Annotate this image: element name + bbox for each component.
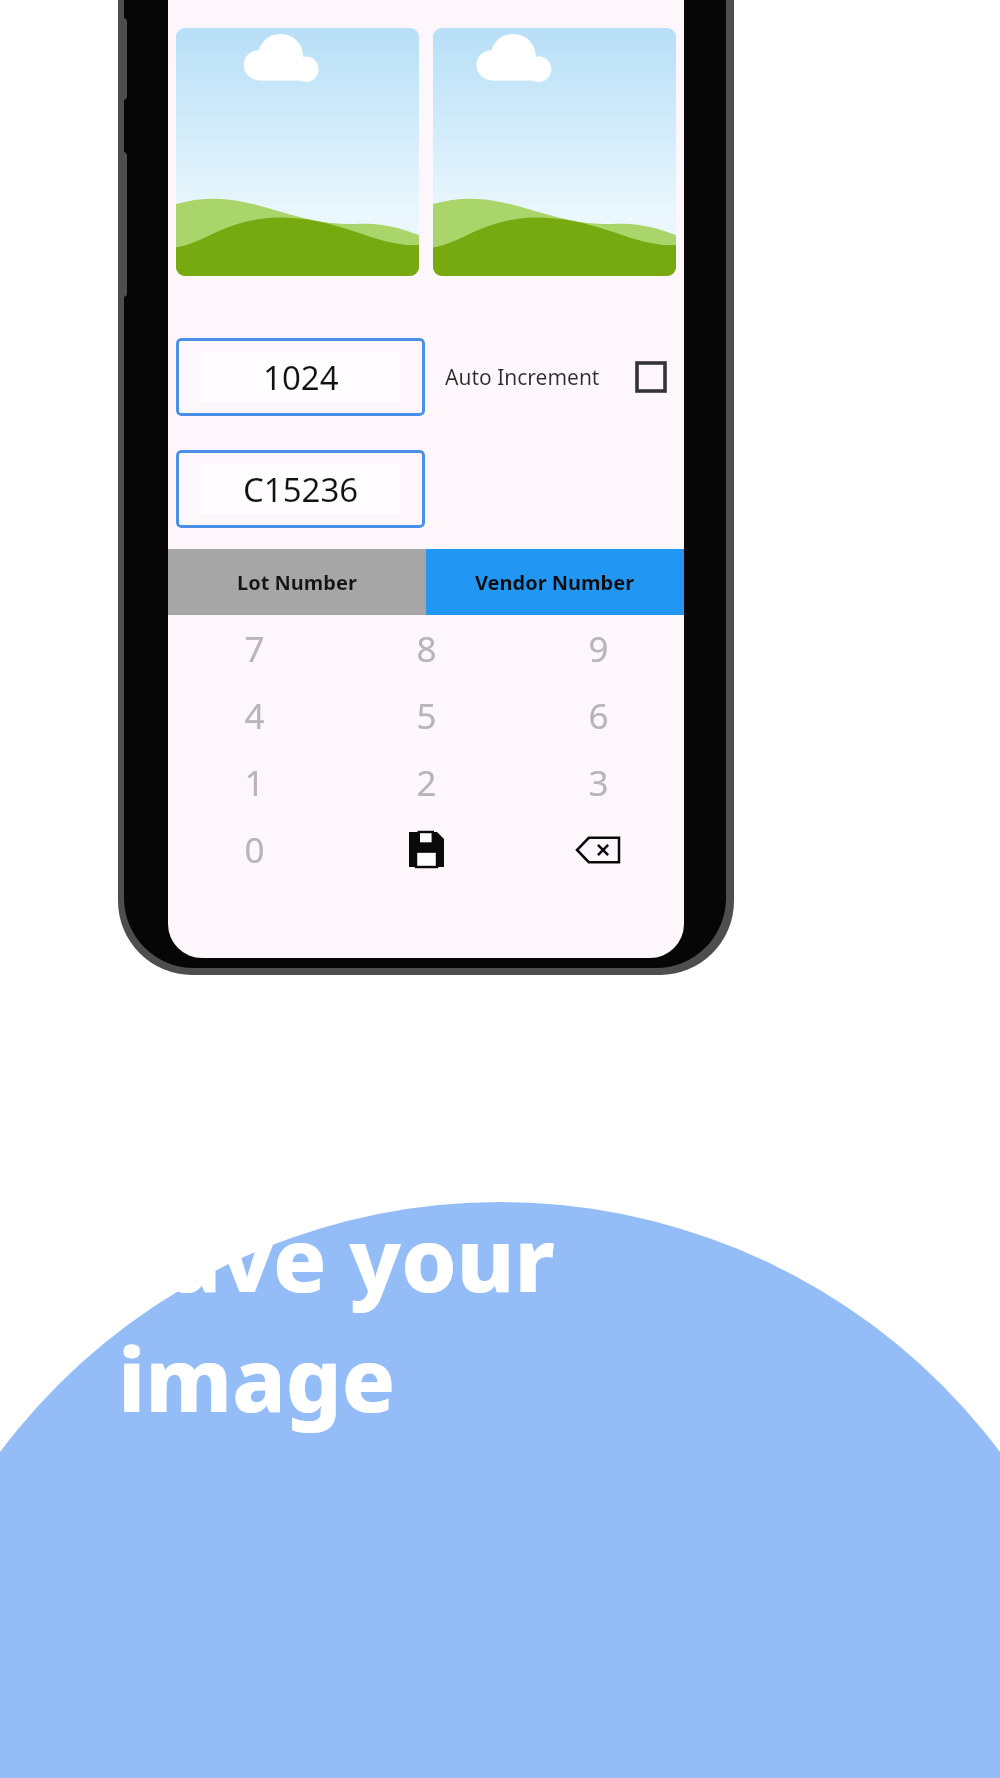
staticText: 2 — [416, 759, 437, 807]
button[interactable]: 7 — [168, 615, 340, 682]
button[interactable]: Save — [340, 816, 512, 883]
staticText: Lot Number — [237, 569, 357, 596]
button[interactable]: 3 — [512, 749, 684, 816]
button[interactable]: 1024 — [176, 338, 425, 416]
staticText: 9 — [588, 625, 609, 673]
staticText: 3 — [588, 759, 609, 807]
button[interactable]: 8 — [340, 615, 512, 682]
button[interactable]: C15236 — [176, 450, 425, 528]
staticText: 5 — [416, 692, 437, 740]
button[interactable]: 0 — [168, 816, 340, 883]
staticText: 4 — [244, 692, 265, 740]
button[interactable]: 4 — [168, 682, 340, 749]
button[interactable]: 9 — [512, 615, 684, 682]
staticText: Vendor Number — [475, 569, 635, 596]
button[interactable]: Lot Number — [168, 549, 426, 615]
staticText: C15236 — [243, 467, 359, 512]
staticText: Save your — [118, 1198, 555, 1318]
button[interactable]: Auto Increment — [630, 356, 672, 398]
staticText: 1024 — [263, 355, 339, 400]
button[interactable]: Backspace — [512, 816, 684, 883]
staticText: 6 — [588, 692, 609, 740]
staticText: 8 — [416, 625, 437, 673]
staticText: image — [118, 1318, 396, 1438]
staticText: 0 — [244, 826, 265, 874]
staticText: 7 — [244, 625, 265, 673]
staticText: Auto Increment — [445, 363, 600, 392]
button[interactable]: 5 — [340, 682, 512, 749]
button[interactable]: 1 — [168, 749, 340, 816]
staticText: 1 — [244, 759, 265, 807]
button[interactable]: 2 — [340, 749, 512, 816]
button[interactable]: Vendor Number — [426, 549, 684, 615]
button[interactable]: 6 — [512, 682, 684, 749]
